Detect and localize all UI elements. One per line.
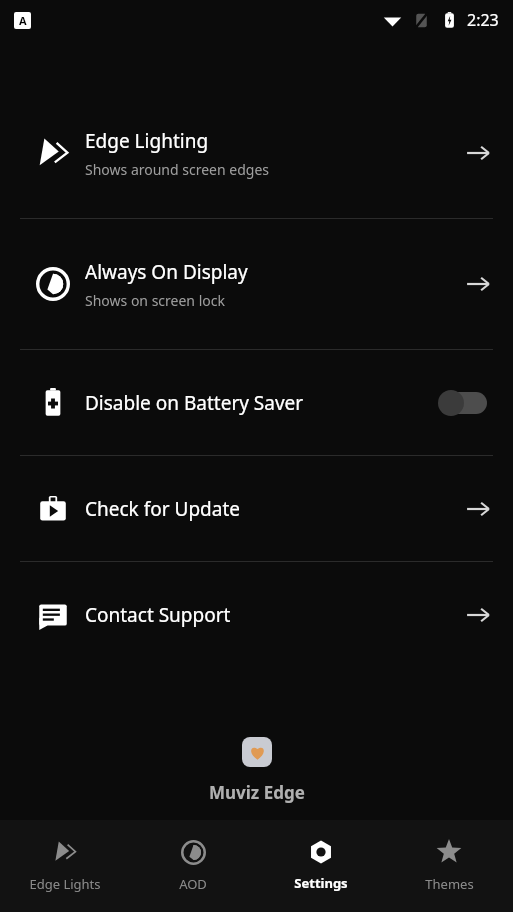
- staticText: Shows around screen edges: [85, 160, 269, 179]
- button[interactable]: Themes: [385, 820, 513, 912]
- staticText: Contact Support: [85, 602, 231, 628]
- staticText: Always On Display: [85, 259, 248, 285]
- button[interactable]: Contact Support: [0, 562, 513, 667]
- button[interactable]: Disable on Battery Saver: [0, 350, 513, 455]
- other: Open: [465, 140, 491, 166]
- staticText: Settings: [294, 874, 348, 892]
- button[interactable]: Edge Lighting: [0, 88, 513, 218]
- other: Open: [465, 602, 491, 628]
- staticText: Edge Lighting: [85, 128, 209, 154]
- button[interactable]: Always On Display: [0, 219, 513, 349]
- button[interactable]: AOD: [129, 820, 257, 912]
- staticText: Check for Update: [85, 496, 240, 522]
- staticText: A: [19, 13, 27, 28]
- button[interactable]: Check for Update: [0, 456, 513, 561]
- staticText: AOD: [179, 875, 207, 893]
- other: Open: [465, 271, 491, 297]
- button[interactable]: Settings: [257, 820, 385, 912]
- staticText: 2:23: [467, 9, 499, 31]
- other: Open: [465, 496, 491, 522]
- staticText: Themes: [425, 875, 474, 893]
- staticText: Muviz Edge: [209, 781, 305, 804]
- button[interactable]: Edge Lights: [0, 820, 129, 912]
- staticText: Edge Lights: [29, 875, 101, 893]
- staticText: Shows on screen lock: [85, 291, 225, 310]
- staticText: Disable on Battery Saver: [85, 390, 304, 416]
- button[interactable]: Disable on Battery Saver toggle: [435, 388, 491, 418]
